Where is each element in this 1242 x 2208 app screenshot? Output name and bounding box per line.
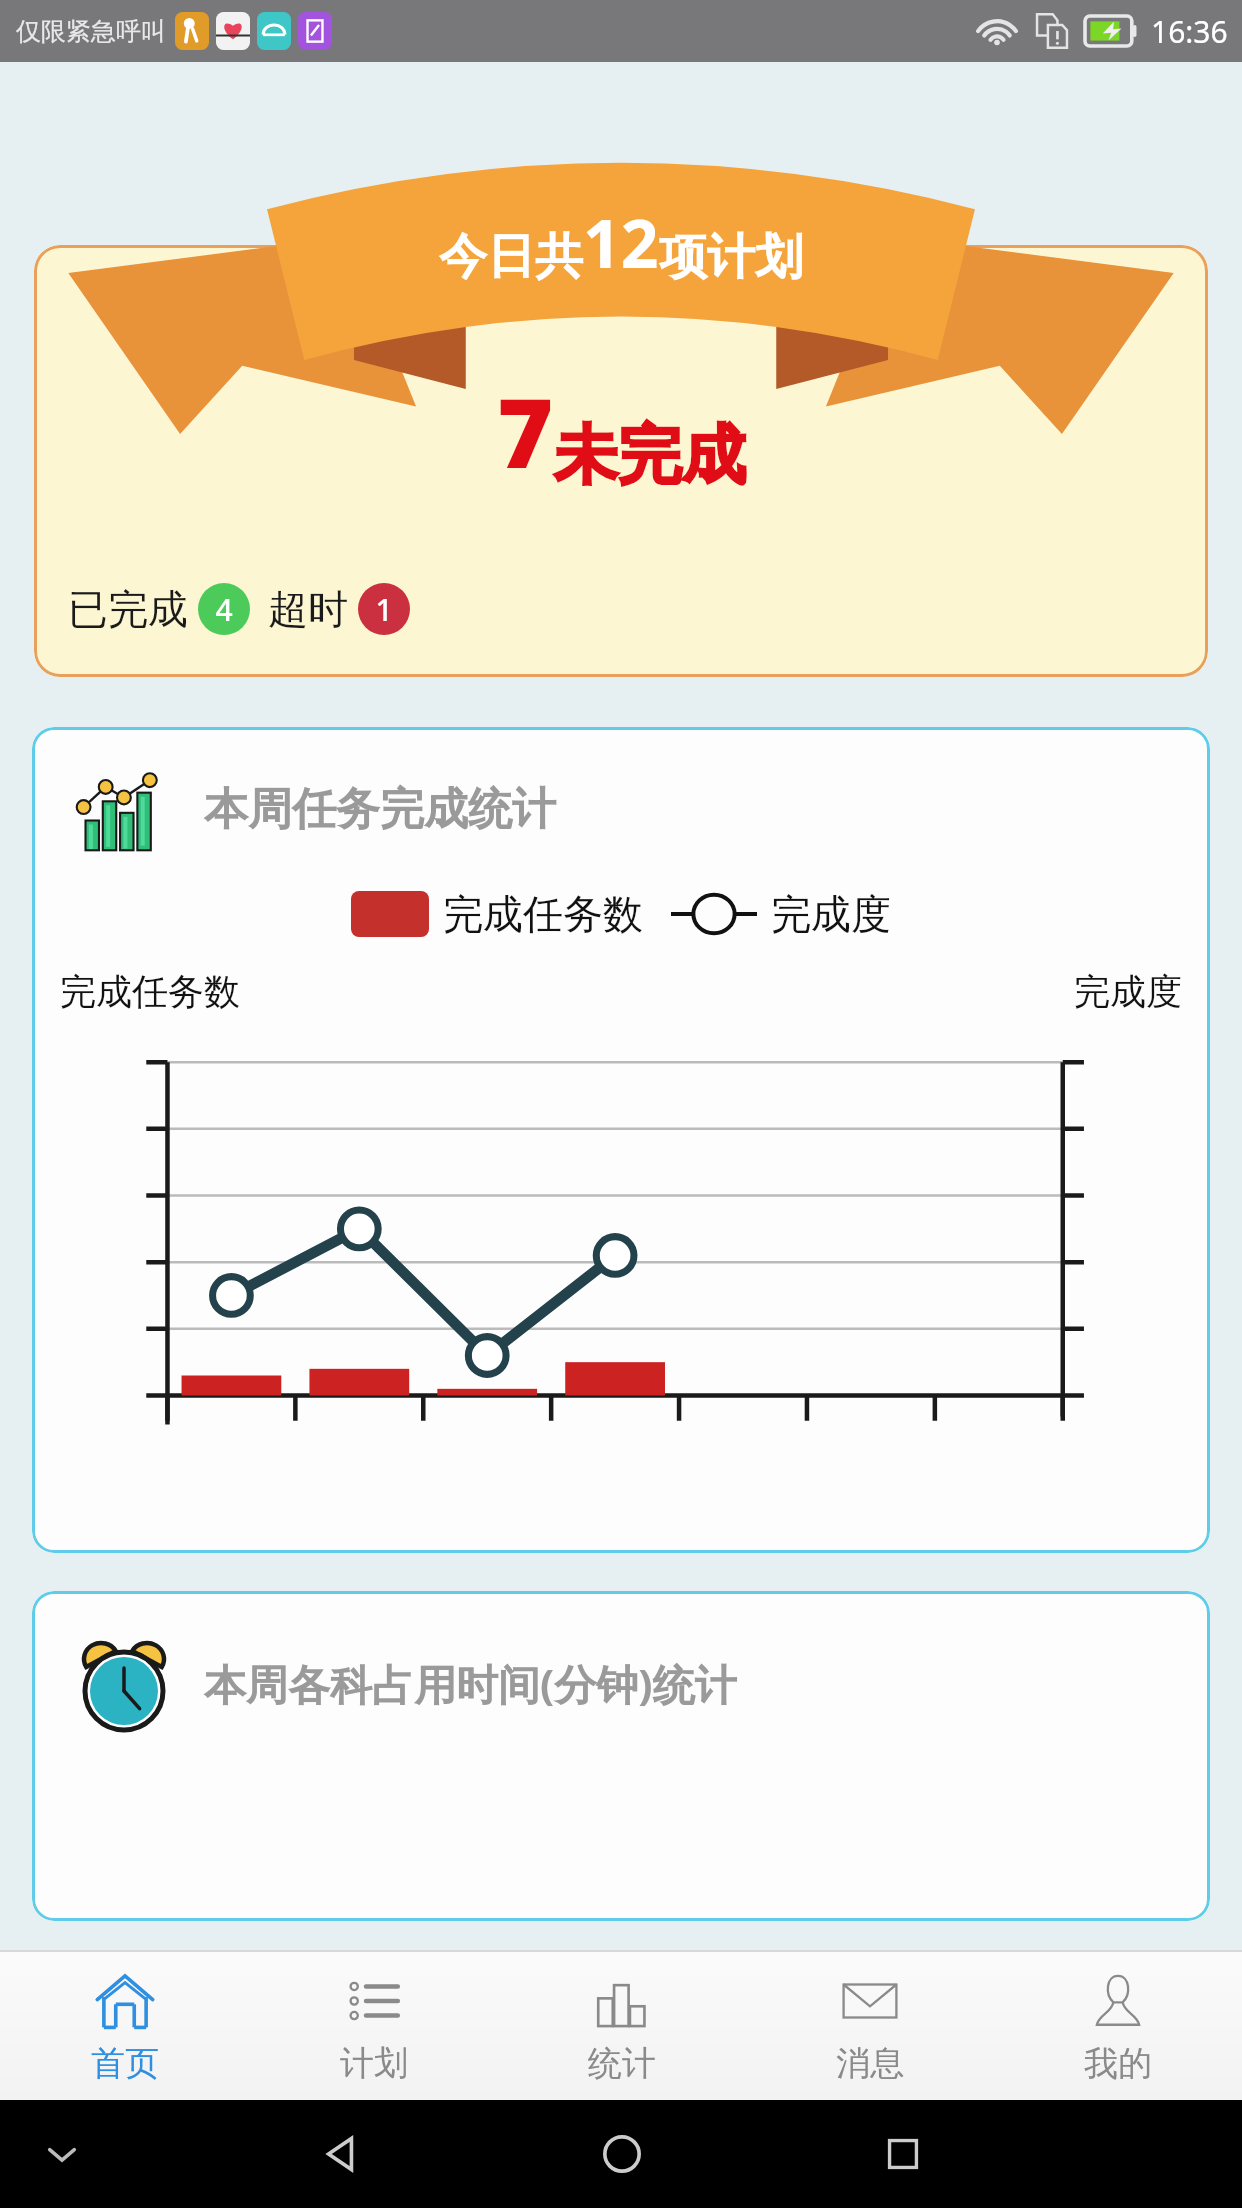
staticText: 7 [497, 365, 554, 496]
button[interactable]: 统计 [498, 1952, 746, 2100]
button[interactable]: 消息 [746, 1952, 994, 2100]
staticText: 已完成 [68, 584, 188, 634]
staticText: 12 [583, 197, 659, 287]
staticText: 完成任务数 [60, 969, 240, 1014]
staticText: 超时 [268, 584, 348, 634]
button[interactable]: 7 [34, 245, 1208, 677]
staticText: 今日共 [439, 227, 583, 287]
button[interactable]: 我的 [994, 1952, 1242, 2100]
button[interactable]: Recent apps [879, 2130, 927, 2178]
staticText: 本周各科占用时间(分钟)统计 [204, 1655, 737, 1712]
staticText: 本周任务完成统计 [204, 782, 556, 837]
staticText: 完成度 [771, 889, 891, 939]
button[interactable]: 首页 [0, 1952, 249, 2100]
button[interactable]: 本周各科占用时间(分钟)统计 [32, 1591, 1210, 1921]
staticText: 项计划 [659, 227, 803, 287]
staticText: 4 [215, 589, 233, 630]
staticText: 1 [375, 589, 393, 630]
staticText: 完成度 [1074, 969, 1182, 1014]
staticText: 首页 [91, 2042, 159, 2085]
button[interactable]: Home [596, 2128, 648, 2180]
staticText: 仅限紧急呼叫 [16, 16, 166, 47]
button[interactable]: Back [314, 2128, 366, 2180]
button[interactable]: 计划 [249, 1952, 498, 2100]
staticText: 计划 [340, 2042, 408, 2085]
staticText: 16:36 [1151, 11, 1228, 52]
button[interactable]: Hide keyboard [40, 2132, 84, 2176]
staticText: 我的 [1084, 2042, 1152, 2085]
button[interactable]: 本周任务完成统计 [32, 727, 1210, 1553]
staticText: 完成任务数 [443, 889, 643, 939]
staticText: 未完成 [554, 415, 746, 496]
staticText: 统计 [588, 2042, 656, 2085]
staticText: 消息 [836, 2042, 904, 2085]
